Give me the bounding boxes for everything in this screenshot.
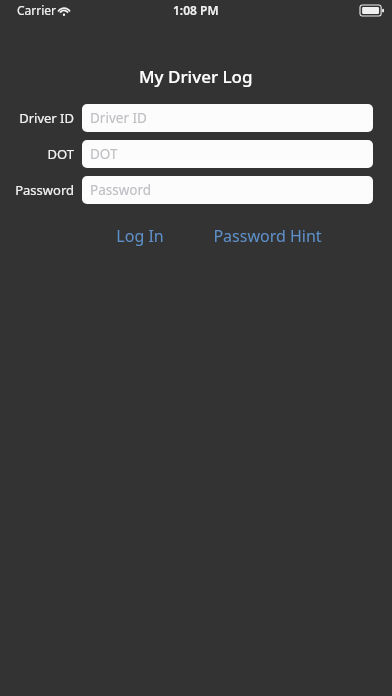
staticText: Driver ID — [90, 109, 147, 127]
staticText: Password — [15, 181, 74, 199]
button[interactable]: Password Hint — [202, 222, 332, 250]
staticText: Password — [90, 181, 152, 199]
staticText: My Driver Log — [139, 65, 253, 88]
staticText: Password Hint — [213, 225, 322, 247]
other: Battery full — [360, 5, 384, 16]
staticText: 1:08 PM — [173, 2, 219, 18]
staticText: DOT — [90, 145, 118, 163]
other: Wi-Fi signal — [57, 5, 71, 16]
staticText: DOT — [47, 145, 74, 163]
staticText: Log In — [116, 225, 164, 247]
button[interactable]: Password — [82, 176, 373, 204]
button[interactable]: DOT — [82, 140, 373, 168]
staticText: Carrier — [17, 2, 57, 18]
staticText: Driver ID — [19, 109, 74, 127]
button[interactable]: Driver ID — [82, 104, 373, 132]
button[interactable]: Log In — [100, 222, 180, 250]
